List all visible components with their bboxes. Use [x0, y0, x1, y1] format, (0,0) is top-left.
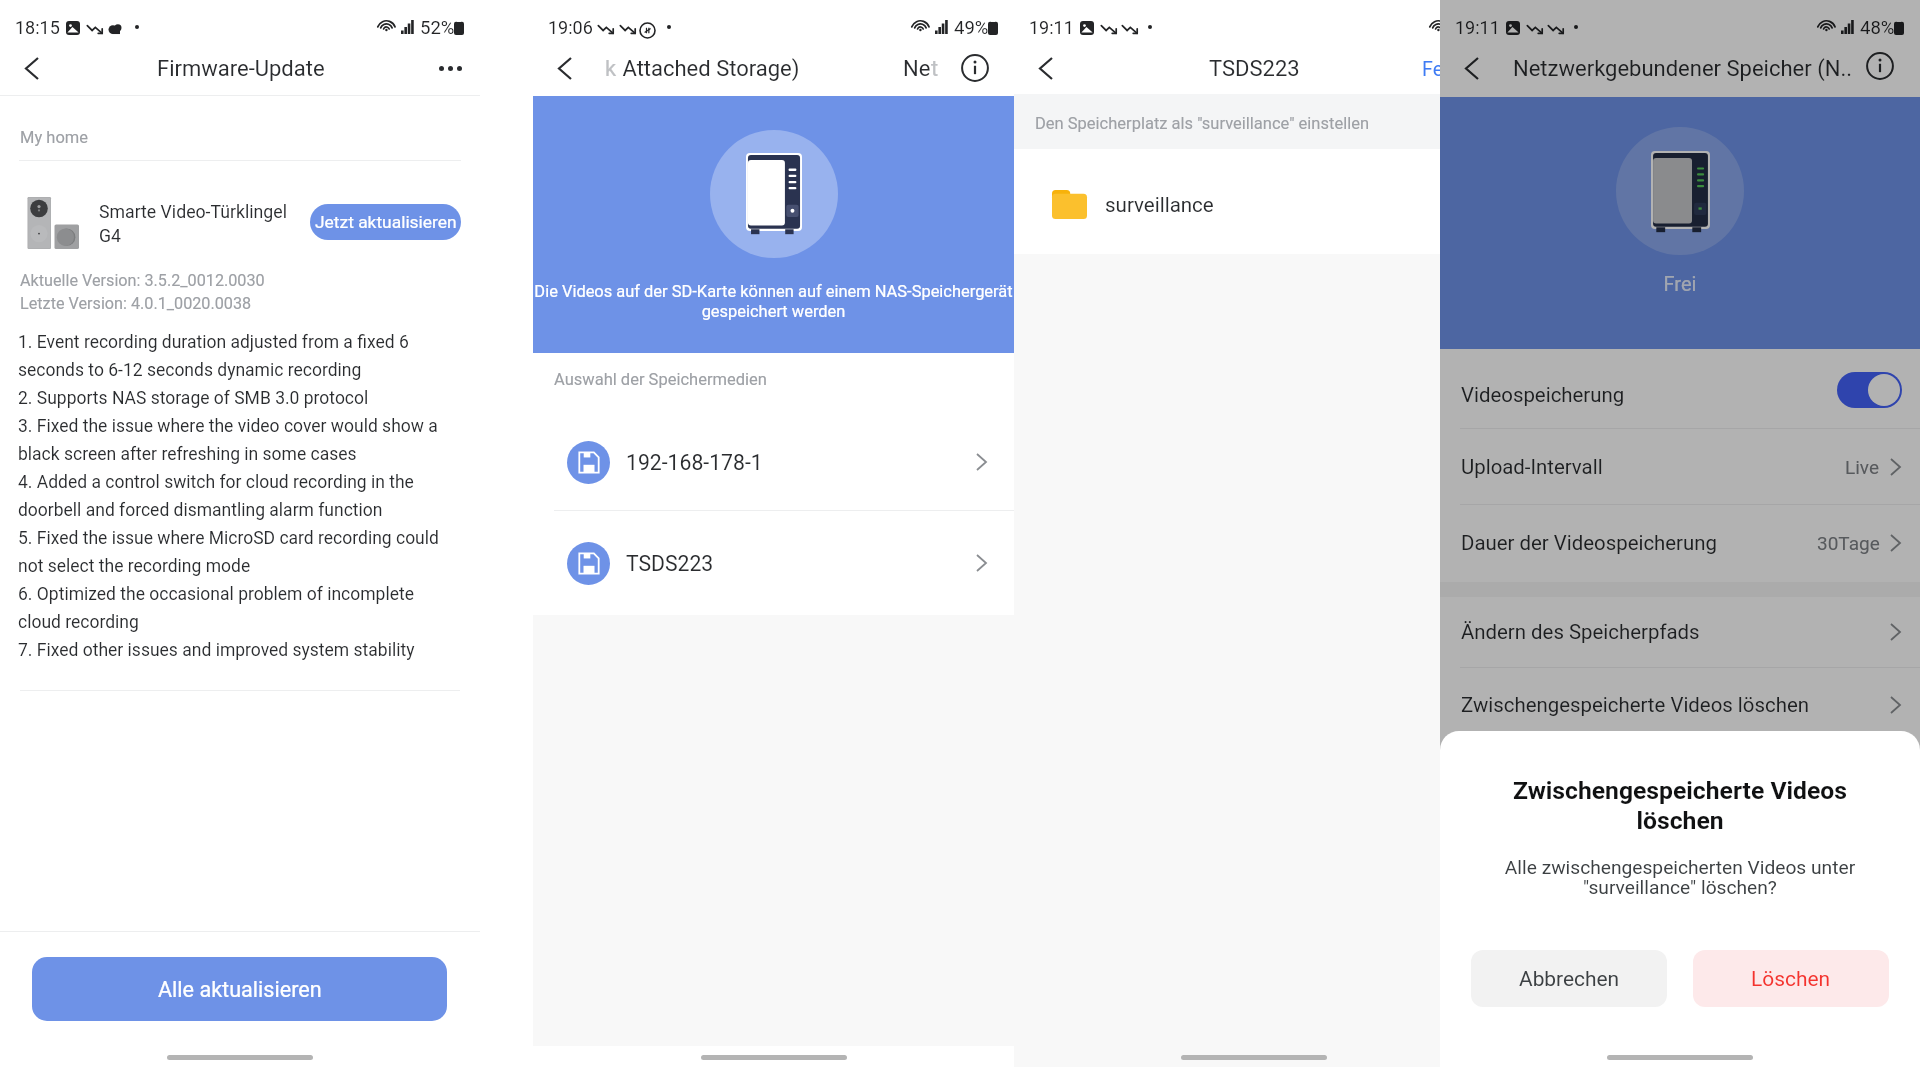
staticText: Jetzt aktualisieren: [315, 212, 457, 232]
staticText: Die Videos auf der SD-Karte können auf e…: [534, 282, 1013, 321]
staticText: Zwischengespeicherte Videos löschen: [1461, 693, 1891, 717]
staticText: k: [605, 56, 617, 82]
staticText: Alle zwischengespeicherten Videos unter …: [1480, 856, 1880, 899]
button[interactable]: Back: [1024, 46, 1068, 90]
staticText: 19:11: [1455, 17, 1500, 38]
button[interactable]: Löschen: [1693, 950, 1889, 1007]
button[interactable]: surveillance: [1014, 152, 1494, 257]
staticText: 49%: [954, 17, 989, 39]
staticText: 18:15: [15, 17, 60, 38]
staticText: 192-168-178-1: [626, 450, 977, 475]
button[interactable]: More options: [428, 46, 472, 90]
button[interactable]: Info: [953, 46, 997, 90]
staticText: surveillance: [1105, 193, 1214, 217]
button[interactable]: Zwischengespeicherte Videos löschen: [1440, 667, 1920, 743]
staticText: Upload-Intervall: [1461, 455, 1845, 479]
staticText: Aktuelle Version: 3.5.2_0012.0030 Letzte…: [20, 271, 265, 313]
button[interactable]: Back: [1450, 46, 1494, 90]
button[interactable]: Dauer der Videospeicherung: [1440, 504, 1920, 582]
button[interactable]: Abbrechen: [1471, 950, 1667, 1007]
staticText: t: [931, 56, 939, 82]
button[interactable]: Alle aktualisieren: [32, 957, 447, 1021]
staticText: Den Speicherplatz als "surveillance" ein…: [1035, 114, 1370, 133]
staticText: 52%: [420, 17, 455, 39]
staticText: Dauer der Videospeicherung: [1461, 531, 1817, 555]
staticText: Alle aktualisieren: [158, 977, 322, 1002]
button[interactable]: Ändern des Speicherpfads: [1440, 597, 1920, 667]
staticText: Netzwerkgebundener Speicher (N..: [1513, 56, 1852, 82]
staticText: Fe: [1422, 58, 1444, 81]
staticText: Ändern des Speicherpfads: [1461, 620, 1891, 644]
button[interactable]: Jetzt aktualisieren: [310, 204, 461, 240]
staticText: Löschen: [1751, 967, 1831, 991]
staticText: Attached Storage): [617, 56, 800, 82]
button[interactable]: Back: [543, 46, 587, 90]
button[interactable]: [1440, 351, 1920, 429]
staticText: 19:06: [548, 17, 593, 38]
staticText: Auswahl der Speichermedien: [554, 370, 767, 389]
button[interactable]: TSDS223: [533, 523, 1014, 603]
staticText: 19:11: [1029, 17, 1074, 38]
staticText: Live: [1845, 456, 1880, 478]
staticText: Abbrechen: [1519, 967, 1620, 991]
staticText: Firmware-Update: [157, 56, 325, 82]
button[interactable]: 192-168-178-1: [533, 422, 1014, 502]
staticText: TSDS223: [1209, 56, 1300, 82]
staticText: Videospeicherung: [1461, 383, 1625, 407]
staticText: Zwischengespeicherte Videos löschen: [1485, 776, 1875, 835]
button[interactable]: Info: [1858, 44, 1902, 88]
staticText: My home: [20, 128, 89, 147]
staticText: TSDS223: [626, 551, 977, 576]
button[interactable]: Back: [10, 46, 54, 90]
staticText: Ne: [903, 56, 931, 82]
staticText: Frei: [1440, 272, 1920, 295]
staticText: 1. Event recording duration adjusted fro…: [18, 332, 460, 660]
staticText: 30Tage: [1817, 532, 1880, 554]
button[interactable]: Upload-Intervall: [1440, 428, 1920, 505]
staticText: 48%: [1860, 17, 1895, 39]
staticText: Smarte Video-Türklingel G4: [99, 202, 289, 246]
